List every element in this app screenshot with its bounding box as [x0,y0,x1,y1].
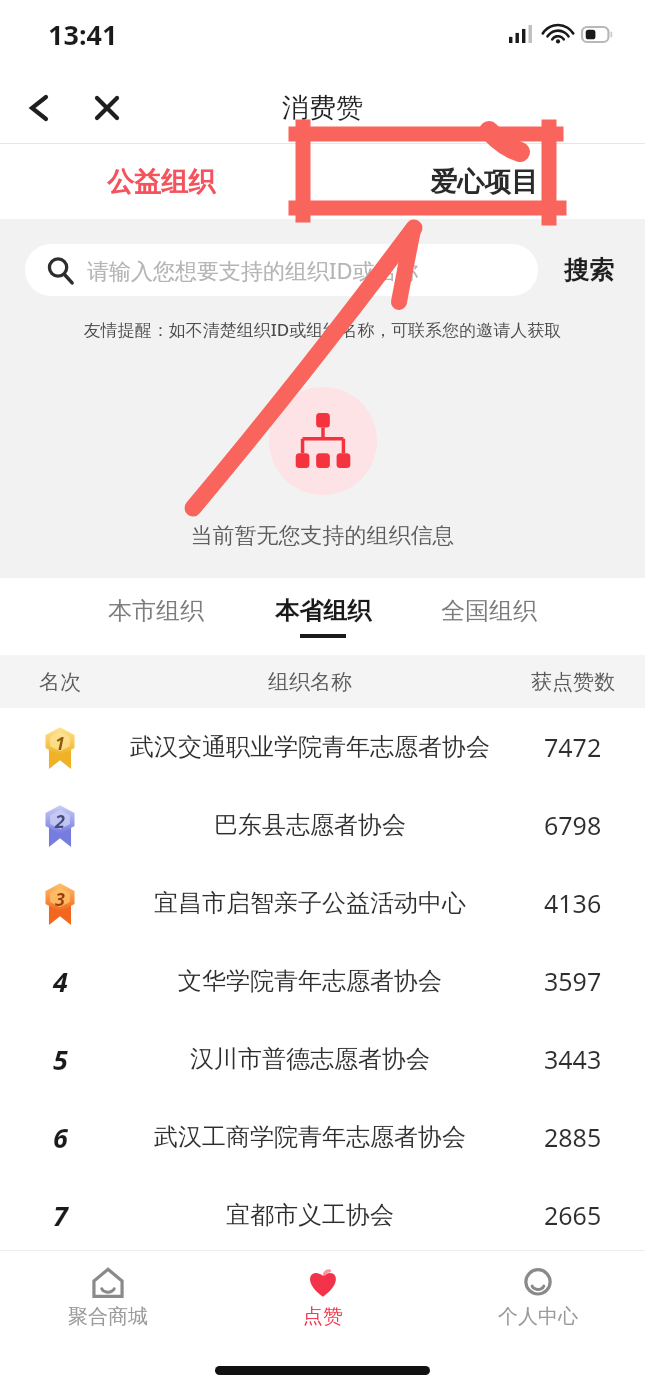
staticText: 4 [53,963,68,1000]
staticText: 4136 [544,886,602,920]
staticText: 本省组织 [275,596,371,626]
button[interactable]: Back [16,85,62,131]
button[interactable]: 个人中心 [430,1262,645,1331]
staticText: 当前暂无您支持的组织信息 [0,522,645,550]
staticText: 2665 [544,1198,602,1232]
staticText: 获点赞数 [531,669,615,695]
button[interactable]: 搜索 [558,249,620,292]
staticText: 友情提醒：如不清楚组织ID或组织名称，可联系您的邀请人获取 [0,318,645,341]
staticText: 7472 [544,730,602,764]
button[interactable]: 4 [0,942,645,1020]
staticText: 6 [53,1119,68,1156]
staticText: 7 [53,1197,68,1234]
button[interactable]: 本省组织 [271,590,375,644]
staticText: 宜都市义工协会 [226,1200,394,1230]
staticText: 爱心项目 [430,165,538,199]
button[interactable]: 本市组织 [104,590,208,644]
staticText: 武汉交通职业学院青年志愿者协会 [130,732,490,762]
staticText: 3 [55,887,65,912]
staticText: 宜昌市启智亲子公益活动中心 [154,888,466,918]
staticText: 3597 [544,964,602,998]
staticText: 组织名称 [268,669,352,695]
staticText: 汉川市普德志愿者协会 [190,1044,430,1074]
staticText: 5 [53,1041,68,1078]
staticText: 消费赞 [282,91,363,125]
button[interactable]: 公益组织 [0,144,322,219]
staticText: 武汉工商学院青年志愿者协会 [154,1122,466,1152]
button[interactable]: 点赞 [215,1262,430,1331]
staticText: 巴东县志愿者协会 [214,810,406,840]
staticText: 名次 [39,669,81,695]
button[interactable]: 2 [0,786,645,864]
staticText: 文华学院青年志愿者协会 [178,966,442,996]
staticText: 13:41 [48,16,118,53]
staticText: 请输入您想要支持的组织ID或名称 [87,255,419,285]
staticText: 2 [55,809,65,834]
staticText: 聚合商城 [68,1304,148,1329]
staticText: 搜索 [564,255,614,286]
staticText: 全国组织 [441,596,537,626]
button[interactable]: 6 [0,1098,645,1176]
button[interactable]: 爱心项目 [322,144,645,219]
staticText: 6798 [544,808,602,842]
button[interactable]: 3 [0,864,645,942]
button[interactable]: Close [84,85,130,131]
staticText: 公益组织 [107,165,215,199]
staticText: 本市组织 [108,596,204,626]
staticText: 3443 [544,1042,602,1076]
button[interactable]: 7 [0,1176,645,1254]
staticText: 1 [55,731,65,756]
button[interactable]: 5 [0,1020,645,1098]
button[interactable]: 聚合商城 [0,1262,215,1331]
button[interactable]: 全国组织 [437,590,541,644]
staticText: 个人中心 [498,1304,578,1329]
button[interactable]: 请输入您想要支持的组织ID或名称 [25,244,538,296]
staticText: 2885 [544,1120,602,1154]
staticText: 点赞 [303,1304,343,1329]
button[interactable]: 1 [0,708,645,786]
